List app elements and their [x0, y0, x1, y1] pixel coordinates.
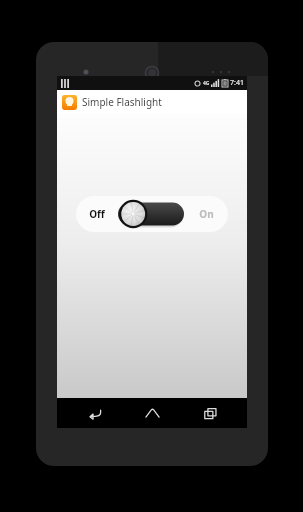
button[interactable]: Flashlight toggle, currently Off: [76, 196, 228, 232]
button[interactable]: Simple Flashlight: [57, 90, 247, 114]
button[interactable]: Back: [75, 398, 115, 428]
staticText: 4G: [203, 80, 210, 87]
staticText: 7:41: [230, 78, 244, 88]
staticText: Simple Flashlight: [82, 95, 162, 109]
button[interactable]: Home: [132, 398, 172, 428]
button[interactable]: Recent apps: [190, 398, 230, 428]
staticText: Off: [89, 207, 105, 221]
staticText: On: [199, 207, 214, 221]
